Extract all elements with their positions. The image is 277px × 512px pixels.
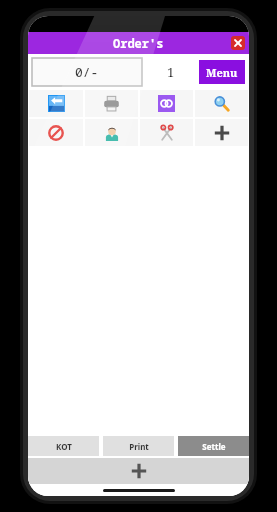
button[interactable]: 0/- (32, 58, 142, 86)
button[interactable]: KOT (28, 436, 99, 456)
button[interactable]: Print (103, 436, 174, 456)
button[interactable]: Split (140, 119, 193, 146)
button[interactable]: Print (85, 90, 138, 117)
button[interactable]: Back (29, 90, 83, 117)
button[interactable]: Add (195, 119, 248, 146)
staticText: 0/- (75, 63, 99, 81)
button[interactable]: Cancel (29, 119, 83, 146)
button[interactable]: Search (195, 90, 248, 117)
button[interactable]: Link (140, 90, 193, 117)
staticText: 1 (167, 63, 175, 81)
staticText: Order's (113, 35, 164, 51)
staticText: Print (129, 441, 149, 452)
button[interactable]: Settle (178, 436, 249, 456)
button[interactable]: Close (231, 36, 245, 50)
button[interactable]: Add (28, 458, 249, 484)
button[interactable]: Customer (85, 119, 138, 146)
staticText: Settle (202, 441, 226, 452)
staticText: Menu (206, 65, 238, 80)
button[interactable]: Menu (199, 60, 245, 84)
staticText: KOT (56, 441, 72, 452)
